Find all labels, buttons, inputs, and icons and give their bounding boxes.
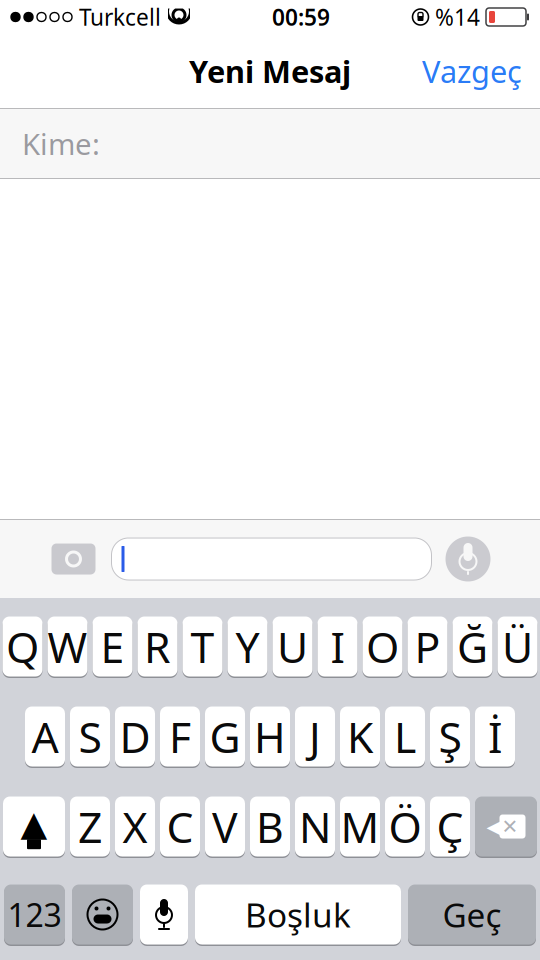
button[interactable]: Geç	[408, 883, 536, 946]
staticText: G	[209, 708, 240, 765]
button[interactable]: C	[160, 795, 200, 858]
staticText: R	[144, 618, 171, 675]
staticText: L	[394, 708, 416, 765]
button[interactable]: L	[385, 705, 425, 768]
staticText: H	[254, 708, 286, 765]
staticText: Yeni Mesaj	[189, 51, 351, 91]
button[interactable]: Ü	[497, 615, 537, 678]
button[interactable]: R	[137, 615, 177, 678]
button[interactable]: Z	[70, 795, 110, 858]
button[interactable]: Kamera	[49, 541, 97, 577]
staticText: C	[166, 798, 193, 855]
staticText: Z	[78, 798, 102, 855]
button[interactable]: E	[92, 615, 132, 678]
button[interactable]: U	[272, 615, 312, 678]
button[interactable]: F	[160, 705, 200, 768]
staticText: Q	[6, 618, 39, 675]
button[interactable]: İ	[475, 705, 515, 768]
button[interactable]: I	[317, 615, 357, 678]
staticText: K	[347, 708, 373, 765]
staticText: M	[340, 798, 379, 855]
staticText: 123	[7, 893, 61, 936]
button[interactable]: Y	[227, 615, 267, 678]
button[interactable]: 123	[4, 883, 65, 946]
staticText: V	[212, 798, 238, 855]
staticText: D	[119, 708, 150, 765]
button[interactable]: W	[47, 615, 87, 678]
button[interactable]: N	[295, 795, 335, 858]
button[interactable]: O	[362, 615, 402, 678]
staticText: P	[414, 618, 440, 675]
staticText: Vazgeç	[422, 51, 522, 91]
staticText: ▲	[20, 804, 47, 843]
button[interactable]: A	[25, 705, 65, 768]
staticText: A	[31, 708, 58, 765]
button[interactable]: Ç	[430, 795, 470, 858]
staticText: Kime:	[22, 124, 100, 163]
staticText: ◀	[486, 814, 503, 839]
staticText: 00:59	[272, 2, 330, 32]
staticText: Ğ	[457, 618, 488, 675]
button[interactable]: Q	[2, 615, 42, 678]
button[interactable]: Büyük harf	[3, 795, 65, 858]
staticText: U	[277, 618, 308, 675]
staticText: X	[122, 798, 147, 855]
staticText: %14	[435, 2, 480, 32]
button[interactable]: Sil	[475, 795, 537, 858]
staticText: N	[299, 798, 331, 855]
button[interactable]: K	[340, 705, 380, 768]
button[interactable]: Ğ	[452, 615, 492, 678]
staticText: I	[330, 618, 344, 675]
staticText: Boşluk	[245, 892, 351, 937]
button[interactable]: G	[205, 705, 245, 768]
button[interactable]: H	[250, 705, 290, 768]
staticText: S	[78, 708, 101, 765]
staticText: Ç	[436, 798, 463, 855]
button[interactable]: Ö	[385, 795, 425, 858]
staticText: W	[47, 618, 87, 675]
button[interactable]: Boşluk	[195, 883, 401, 946]
button[interactable]: Ş	[430, 705, 470, 768]
staticText: F	[169, 708, 191, 765]
button[interactable]: Sesli mesaj	[445, 536, 490, 581]
staticText: ✕	[501, 815, 518, 838]
button[interactable]: Emoji	[72, 883, 133, 946]
button[interactable]: J	[295, 705, 335, 768]
staticText: Geç	[442, 892, 501, 937]
staticText: Y	[235, 618, 259, 675]
staticText: E	[100, 618, 124, 675]
staticText: İ	[488, 708, 502, 765]
staticText: Ş	[438, 708, 461, 765]
staticText: Turkcell	[79, 2, 161, 32]
button[interactable]: M	[340, 795, 380, 858]
staticText: B	[256, 798, 284, 855]
button[interactable]: Kime:	[0, 109, 540, 178]
button[interactable]: D	[115, 705, 155, 768]
staticText: Ö	[388, 798, 421, 855]
button[interactable]: B	[250, 795, 290, 858]
button[interactable]: X	[115, 795, 155, 858]
button[interactable]: T	[182, 615, 222, 678]
staticText: Ü	[502, 618, 533, 675]
staticText: O	[366, 618, 399, 675]
button[interactable]: V	[205, 795, 245, 858]
staticText: J	[309, 708, 321, 765]
button[interactable]: Vazgeç	[410, 43, 534, 99]
button[interactable]: P	[407, 615, 447, 678]
button[interactable]: S	[70, 705, 110, 768]
staticText: T	[190, 618, 214, 675]
button[interactable]: Dikte	[140, 883, 188, 946]
